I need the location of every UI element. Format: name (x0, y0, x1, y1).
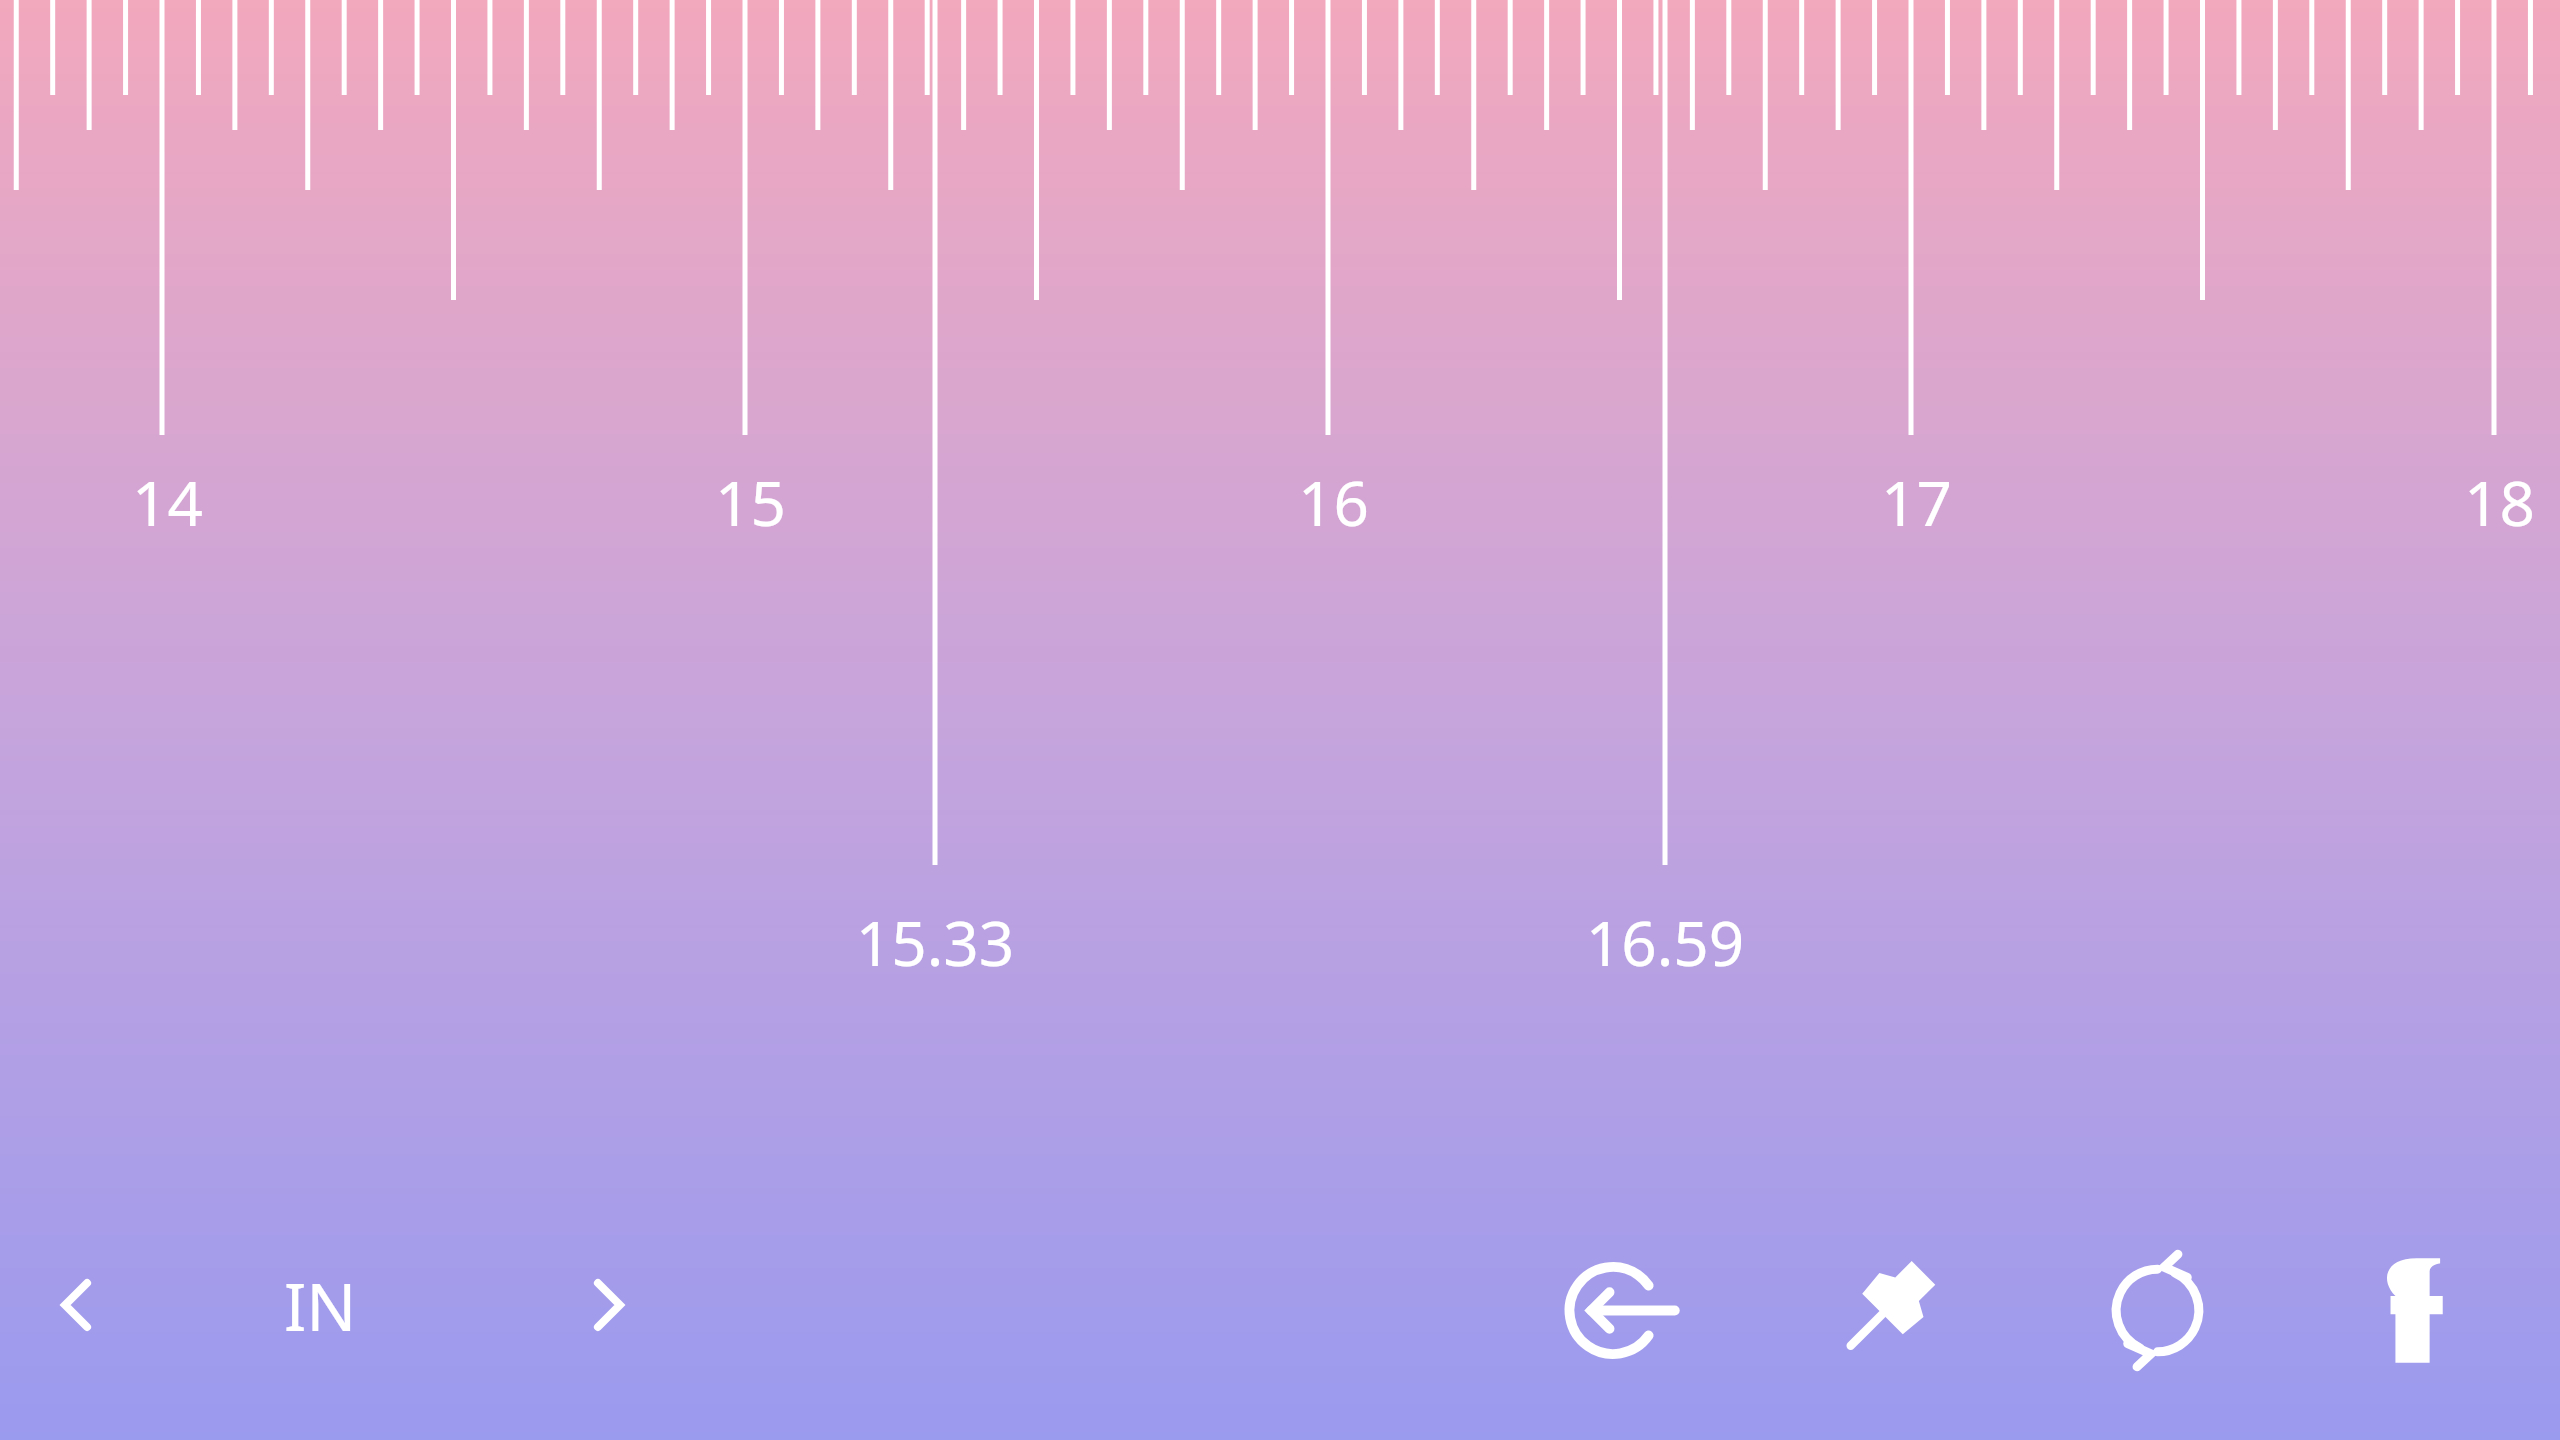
staticText: 15 (715, 460, 786, 544)
staticText: 17 (1881, 460, 1952, 544)
button[interactable]: Pin (1825, 1238, 1970, 1383)
staticText: 15.33 (795, 900, 1075, 984)
button[interactable]: Facebook (2345, 1238, 2490, 1383)
button[interactable]: Rotate (2085, 1238, 2230, 1383)
staticText: 16.59 (1525, 900, 1805, 984)
button[interactable]: Previous unit (20, 1250, 130, 1360)
staticText: IN (284, 1260, 357, 1350)
staticText: 14 (132, 460, 203, 544)
button[interactable]: IN (220, 1250, 420, 1360)
button[interactable]: Exit (1555, 1238, 1700, 1383)
staticText: 18 (2464, 460, 2535, 544)
staticText: 16 (1298, 460, 1369, 544)
button[interactable]: Next unit (555, 1250, 665, 1360)
